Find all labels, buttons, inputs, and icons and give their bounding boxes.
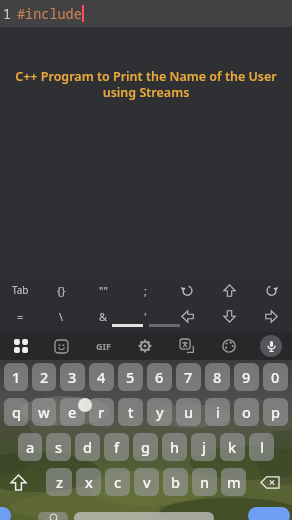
button[interactable]: u [176, 398, 201, 426]
button[interactable]: w [32, 398, 56, 426]
button[interactable]: \ [41, 303, 82, 329]
staticText: j [202, 437, 206, 457]
staticText: 3 [68, 367, 77, 387]
button[interactable] [166, 277, 208, 303]
button[interactable] [166, 332, 208, 360]
button[interactable]: = [0, 303, 41, 329]
staticText: & [99, 309, 108, 324]
button[interactable]: {} [41, 277, 82, 303]
staticText: d [83, 437, 92, 457]
button[interactable] [38, 512, 68, 520]
button[interactable] [0, 507, 11, 520]
button[interactable]: c [105, 468, 130, 496]
staticText: t [128, 402, 134, 422]
staticText: 8 [213, 367, 222, 387]
button[interactable]: 8 [205, 363, 230, 391]
button[interactable]: 5 [118, 363, 143, 391]
button[interactable]: 2 [32, 363, 56, 391]
button[interactable]: j [191, 433, 216, 461]
button[interactable]: 6 [147, 363, 172, 391]
staticText: ' [144, 309, 147, 324]
button[interactable] [124, 332, 166, 360]
button[interactable]: b [163, 468, 188, 496]
button[interactable]: p [263, 398, 288, 426]
button[interactable]: 1 [4, 363, 28, 391]
button[interactable] [260, 335, 282, 357]
button[interactable]: GIF [82, 332, 124, 360]
button[interactable]: a [18, 433, 42, 461]
staticText: q [12, 402, 21, 422]
button[interactable]: 0 [263, 363, 288, 391]
button[interactable] [250, 332, 292, 360]
button[interactable]: Tab [0, 277, 41, 303]
staticText: #include [17, 5, 82, 23]
button[interactable]: k [220, 433, 245, 461]
button[interactable] [74, 512, 214, 520]
button[interactable] [250, 303, 292, 329]
button[interactable] [0, 332, 41, 360]
button[interactable]: q [4, 398, 28, 426]
button[interactable]: l [249, 433, 274, 461]
staticText: l [260, 437, 264, 457]
button[interactable]: h [162, 433, 187, 461]
button[interactable]: i [205, 398, 230, 426]
staticText: x [85, 472, 93, 492]
staticText: = [17, 309, 24, 324]
button[interactable]: ' [124, 303, 166, 329]
staticText: 6 [155, 367, 164, 387]
button[interactable]: g [133, 433, 158, 461]
button[interactable]: 4 [89, 363, 114, 391]
staticText: y [156, 402, 164, 422]
button[interactable]: f [104, 433, 129, 461]
button[interactable]: t [118, 398, 143, 426]
button[interactable] [208, 303, 250, 329]
staticText: w [38, 402, 50, 422]
staticText: f [114, 437, 120, 457]
staticText: u [184, 402, 194, 422]
staticText: m [227, 472, 241, 492]
button[interactable]: n [192, 468, 217, 496]
button[interactable]: z [46, 468, 72, 496]
staticText: b [171, 472, 180, 492]
button[interactable]: o [234, 398, 259, 426]
button[interactable]: r [89, 398, 114, 426]
button[interactable] [248, 468, 292, 496]
staticText: p [271, 402, 280, 422]
button[interactable] [166, 303, 208, 329]
button[interactable] [250, 277, 292, 303]
staticText: Tab [12, 283, 29, 297]
staticText: 1 [12, 367, 21, 387]
staticText: 5 [126, 367, 135, 387]
button[interactable]: d [75, 433, 100, 461]
staticText: i [216, 402, 220, 422]
staticText: o [242, 402, 251, 422]
button[interactable]: 9 [234, 363, 259, 391]
button[interactable]: y [147, 398, 172, 426]
button[interactable] [41, 332, 82, 360]
staticText: 0 [271, 367, 280, 387]
staticText: h [170, 437, 180, 457]
staticText: 4 [97, 367, 106, 387]
staticText: {} [57, 283, 66, 298]
button[interactable]: e [60, 398, 85, 426]
button[interactable]: ; [124, 277, 166, 303]
staticText: 9 [242, 367, 251, 387]
button[interactable]: 3 [60, 363, 85, 391]
staticText: ; [144, 283, 147, 298]
button[interactable] [208, 277, 250, 303]
staticText: g [141, 437, 150, 457]
staticText: e [68, 402, 77, 422]
button[interactable] [248, 507, 290, 520]
button[interactable]: "" [82, 277, 124, 303]
button[interactable] [208, 332, 250, 360]
button[interactable]: & [82, 303, 124, 329]
button[interactable]: x [76, 468, 101, 496]
button[interactable]: m [221, 468, 246, 496]
button[interactable] [0, 468, 44, 496]
button[interactable]: s [46, 433, 71, 461]
button[interactable]: 7 [176, 363, 201, 391]
staticText: 2 [40, 367, 49, 387]
staticText: \ [59, 309, 64, 324]
button[interactable]: v [134, 468, 159, 496]
staticText: s [55, 437, 63, 457]
